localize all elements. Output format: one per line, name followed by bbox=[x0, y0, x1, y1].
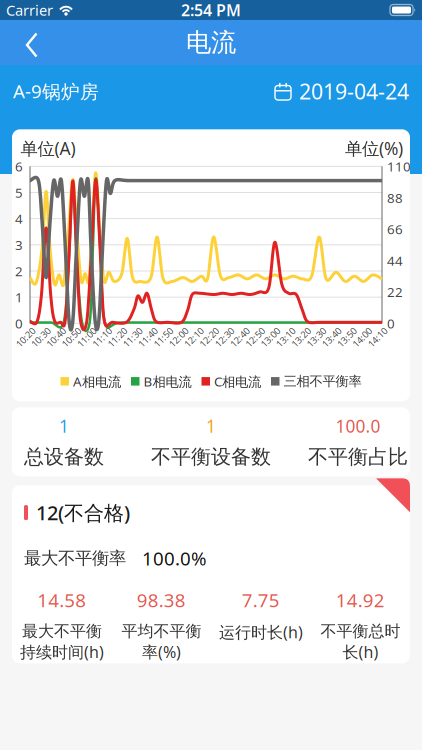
staticText: 14.58 bbox=[37, 588, 86, 612]
staticText: 1 bbox=[15, 288, 23, 306]
staticText: 单位(%) bbox=[345, 137, 403, 160]
staticText: 12:10 bbox=[182, 331, 205, 343]
staticText: 0 bbox=[387, 314, 395, 332]
staticText: 13:10 bbox=[274, 331, 297, 343]
staticText: 110 bbox=[387, 157, 411, 175]
staticText: 运行时长(h) bbox=[219, 621, 303, 643]
staticText: 14:10 bbox=[366, 331, 389, 343]
staticText: 3 bbox=[15, 236, 23, 254]
staticText: 2019-04-24 bbox=[299, 77, 409, 105]
staticText: 电流 bbox=[186, 27, 236, 58]
staticText: 11:10 bbox=[90, 331, 113, 343]
staticText: Carrier bbox=[6, 0, 53, 20]
staticText: 2 bbox=[15, 262, 23, 280]
staticText: 13:40 bbox=[320, 331, 343, 343]
staticText: 66 bbox=[387, 220, 403, 238]
staticText: 0 bbox=[15, 314, 23, 332]
staticText: 12:20 bbox=[198, 331, 221, 343]
button[interactable]: Back bbox=[14, 20, 54, 65]
staticText: 12(不合格) bbox=[36, 499, 130, 526]
staticText: A-9锅炉房 bbox=[13, 79, 99, 104]
staticText: 11:30 bbox=[121, 331, 144, 343]
staticText: 不平衡设备数 bbox=[151, 445, 271, 469]
staticText: 最大不平衡率 bbox=[24, 548, 126, 569]
staticText: 11:00 bbox=[75, 331, 98, 343]
staticText: 100.0 bbox=[335, 414, 380, 437]
staticText: 4 bbox=[15, 210, 23, 227]
staticText: B相电流 bbox=[143, 372, 191, 390]
staticText: 11:50 bbox=[152, 331, 175, 343]
staticText: 44 bbox=[387, 252, 403, 269]
staticText: 最大不平衡 持续时间(h) bbox=[20, 621, 104, 662]
staticText: 10:20 bbox=[14, 331, 37, 343]
staticText: 5 bbox=[15, 184, 23, 201]
staticText: 13:50 bbox=[335, 331, 358, 343]
staticText: 12:50 bbox=[244, 331, 267, 343]
staticText: 12:30 bbox=[213, 331, 236, 343]
staticText: A相电流 bbox=[73, 372, 121, 390]
button[interactable]: 选择日期 2019-04-24 bbox=[274, 77, 409, 105]
staticText: 10:40 bbox=[45, 331, 68, 343]
staticText: 单位(A) bbox=[20, 137, 75, 160]
staticText: 14:00 bbox=[351, 331, 374, 343]
staticText: C相电流 bbox=[214, 372, 261, 390]
staticText: 13:20 bbox=[289, 331, 312, 343]
staticText: 7.75 bbox=[242, 588, 280, 612]
staticText: 10:50 bbox=[60, 331, 83, 343]
staticText: 22 bbox=[387, 283, 403, 301]
staticText: 三相不平衡率 bbox=[283, 373, 361, 389]
staticText: 14.92 bbox=[336, 588, 385, 612]
staticText: 100.0% bbox=[142, 546, 207, 571]
staticText: 6 bbox=[15, 157, 23, 175]
staticText: 12:00 bbox=[167, 331, 190, 343]
staticText: 2:54 PM bbox=[181, 0, 241, 21]
staticText: 12:40 bbox=[228, 331, 251, 343]
staticText: 10:30 bbox=[29, 331, 52, 343]
staticText: 11:40 bbox=[136, 331, 159, 343]
staticText: 98.38 bbox=[137, 588, 186, 612]
staticText: 13:30 bbox=[305, 331, 328, 343]
staticText: 平均不平衡 率(%) bbox=[121, 621, 201, 662]
staticText: 11:20 bbox=[106, 331, 129, 343]
staticText: 1 bbox=[59, 414, 69, 437]
staticText: 1 bbox=[206, 414, 216, 437]
staticText: 不平衡占比 bbox=[308, 445, 408, 469]
staticText: 13:00 bbox=[259, 331, 282, 343]
staticText: 不平衡总时 长(h) bbox=[320, 621, 400, 662]
staticText: 总设备数 bbox=[24, 445, 104, 469]
staticText: 88 bbox=[387, 189, 403, 207]
